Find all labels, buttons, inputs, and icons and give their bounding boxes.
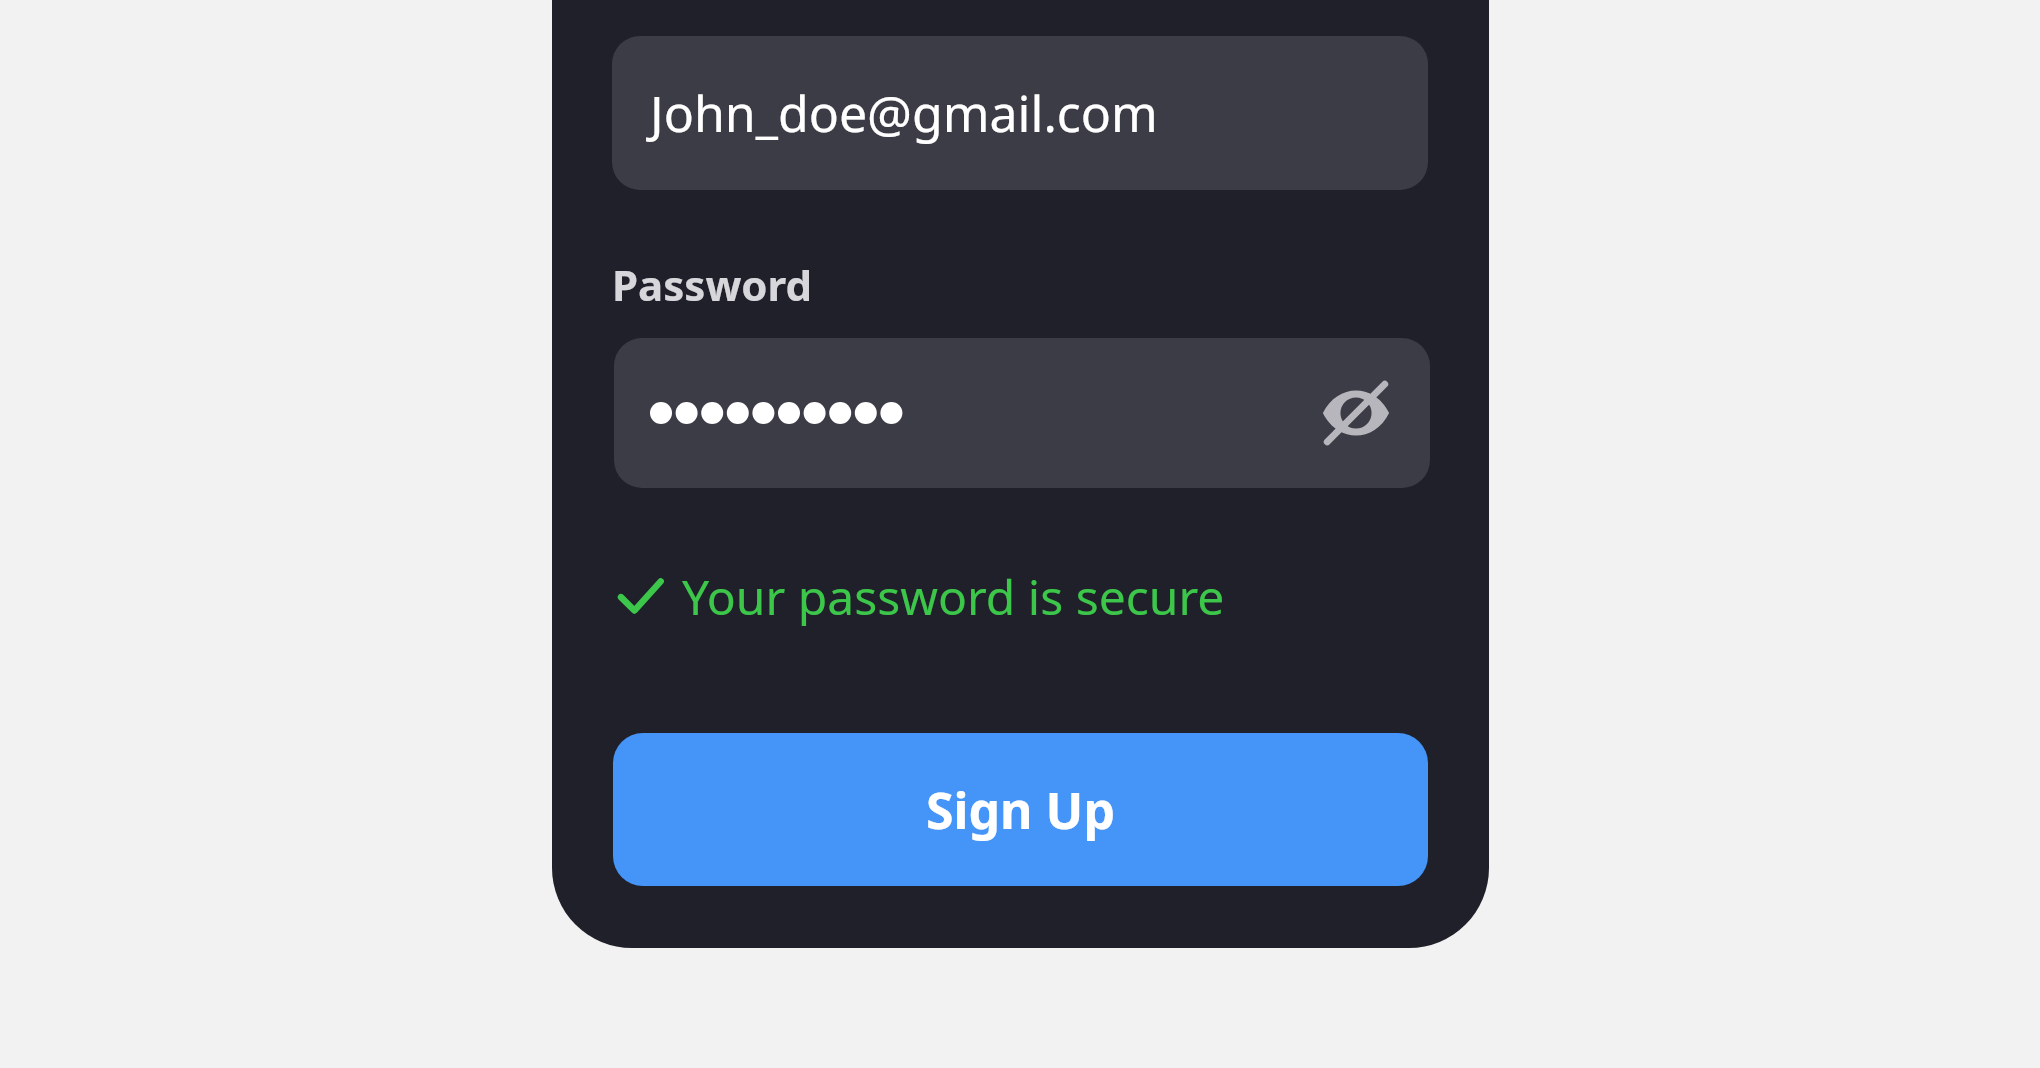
staticText: Sign Up xyxy=(926,776,1115,844)
button[interactable]: Show password xyxy=(1318,375,1394,451)
button[interactable]: Sign Up xyxy=(613,733,1428,886)
staticText: John_doe@gmail.com xyxy=(650,79,1158,147)
staticText: Password xyxy=(612,256,813,313)
button[interactable]: Show password xyxy=(614,338,1430,488)
button[interactable]: John_doe@gmail.com xyxy=(612,36,1428,190)
staticText: Your password is secure xyxy=(682,564,1225,629)
